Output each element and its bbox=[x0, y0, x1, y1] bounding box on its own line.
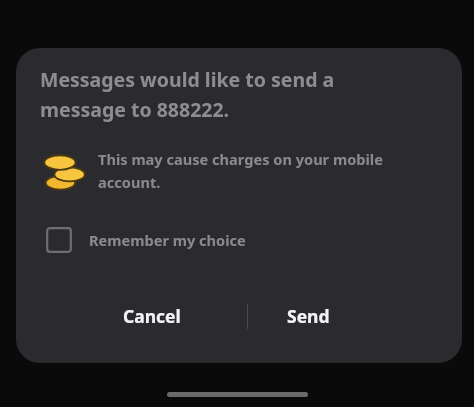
button[interactable]: Cancel bbox=[72, 292, 232, 340]
other: Charges bbox=[42, 148, 88, 192]
staticText: Cancel bbox=[123, 304, 181, 328]
staticText: Remember my choice bbox=[89, 230, 246, 250]
staticText: Send bbox=[287, 304, 330, 328]
button[interactable]: Remember my choice bbox=[46, 218, 326, 262]
staticText: This may cause charges on your mobile ac… bbox=[98, 149, 383, 192]
button[interactable]: Send bbox=[228, 292, 388, 340]
staticText: Messages would like to send a message to… bbox=[40, 66, 335, 122]
